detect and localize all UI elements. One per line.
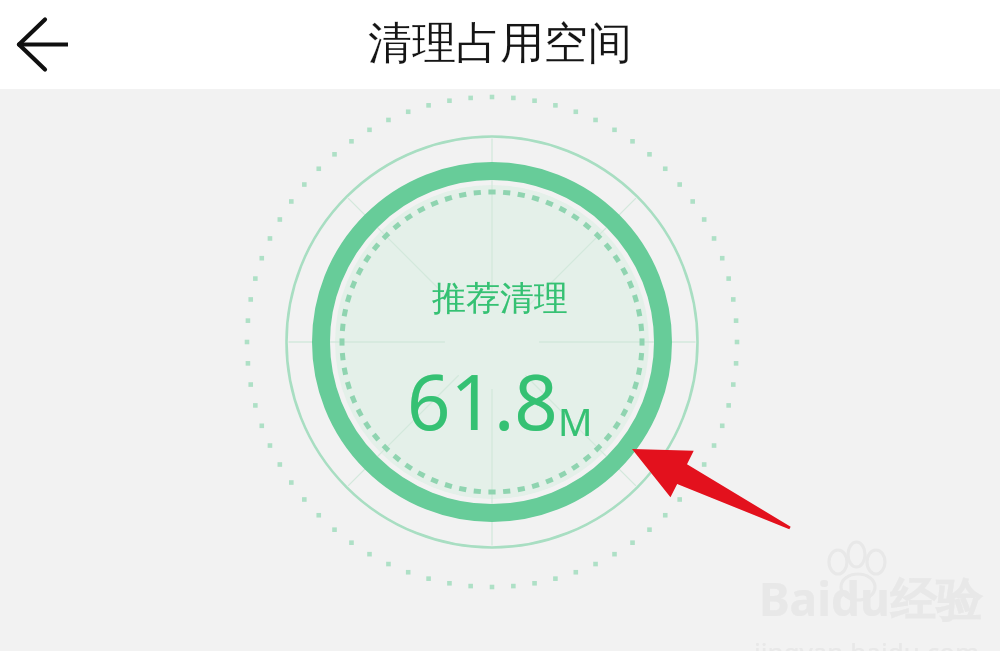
- staticText: 61.8: [407, 349, 558, 453]
- staticText: M: [558, 395, 593, 447]
- button[interactable]: Back: [0, 0, 86, 89]
- staticText: 清理占用空间: [368, 16, 632, 71]
- staticText: 推荐清理: [432, 277, 568, 320]
- staticText: Baidu经验: [759, 567, 982, 630]
